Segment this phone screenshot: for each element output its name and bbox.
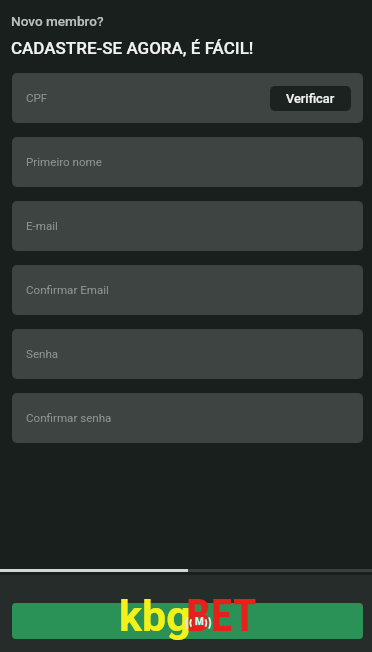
staticText: Primeiro nome (26, 155, 102, 169)
staticText: M (195, 616, 204, 628)
staticText: CADASTRE-SE AGORA, É FÁCIL! (11, 38, 254, 58)
staticText: Senha (26, 347, 59, 361)
button[interactable]: Confirmar senha (12, 393, 363, 443)
button[interactable]: Confirmar Email (12, 265, 363, 315)
staticText: Novo membro? (11, 13, 104, 29)
button[interactable]: E-mail (12, 201, 363, 251)
staticText: Confirmar Email (26, 283, 109, 297)
staticText: Confirmar senha (26, 411, 112, 425)
button[interactable] (12, 603, 363, 639)
staticText: Verificar (286, 91, 335, 106)
button[interactable]: Primeiro nome (12, 137, 363, 187)
staticText: E-mail (26, 219, 58, 233)
button[interactable]: CPF (12, 73, 363, 123)
button[interactable]: Senha (12, 329, 363, 379)
staticText: BET (186, 590, 257, 642)
button[interactable]: Verificar (270, 86, 351, 111)
staticText: kbg (119, 591, 191, 641)
staticText: CPF (26, 91, 48, 105)
